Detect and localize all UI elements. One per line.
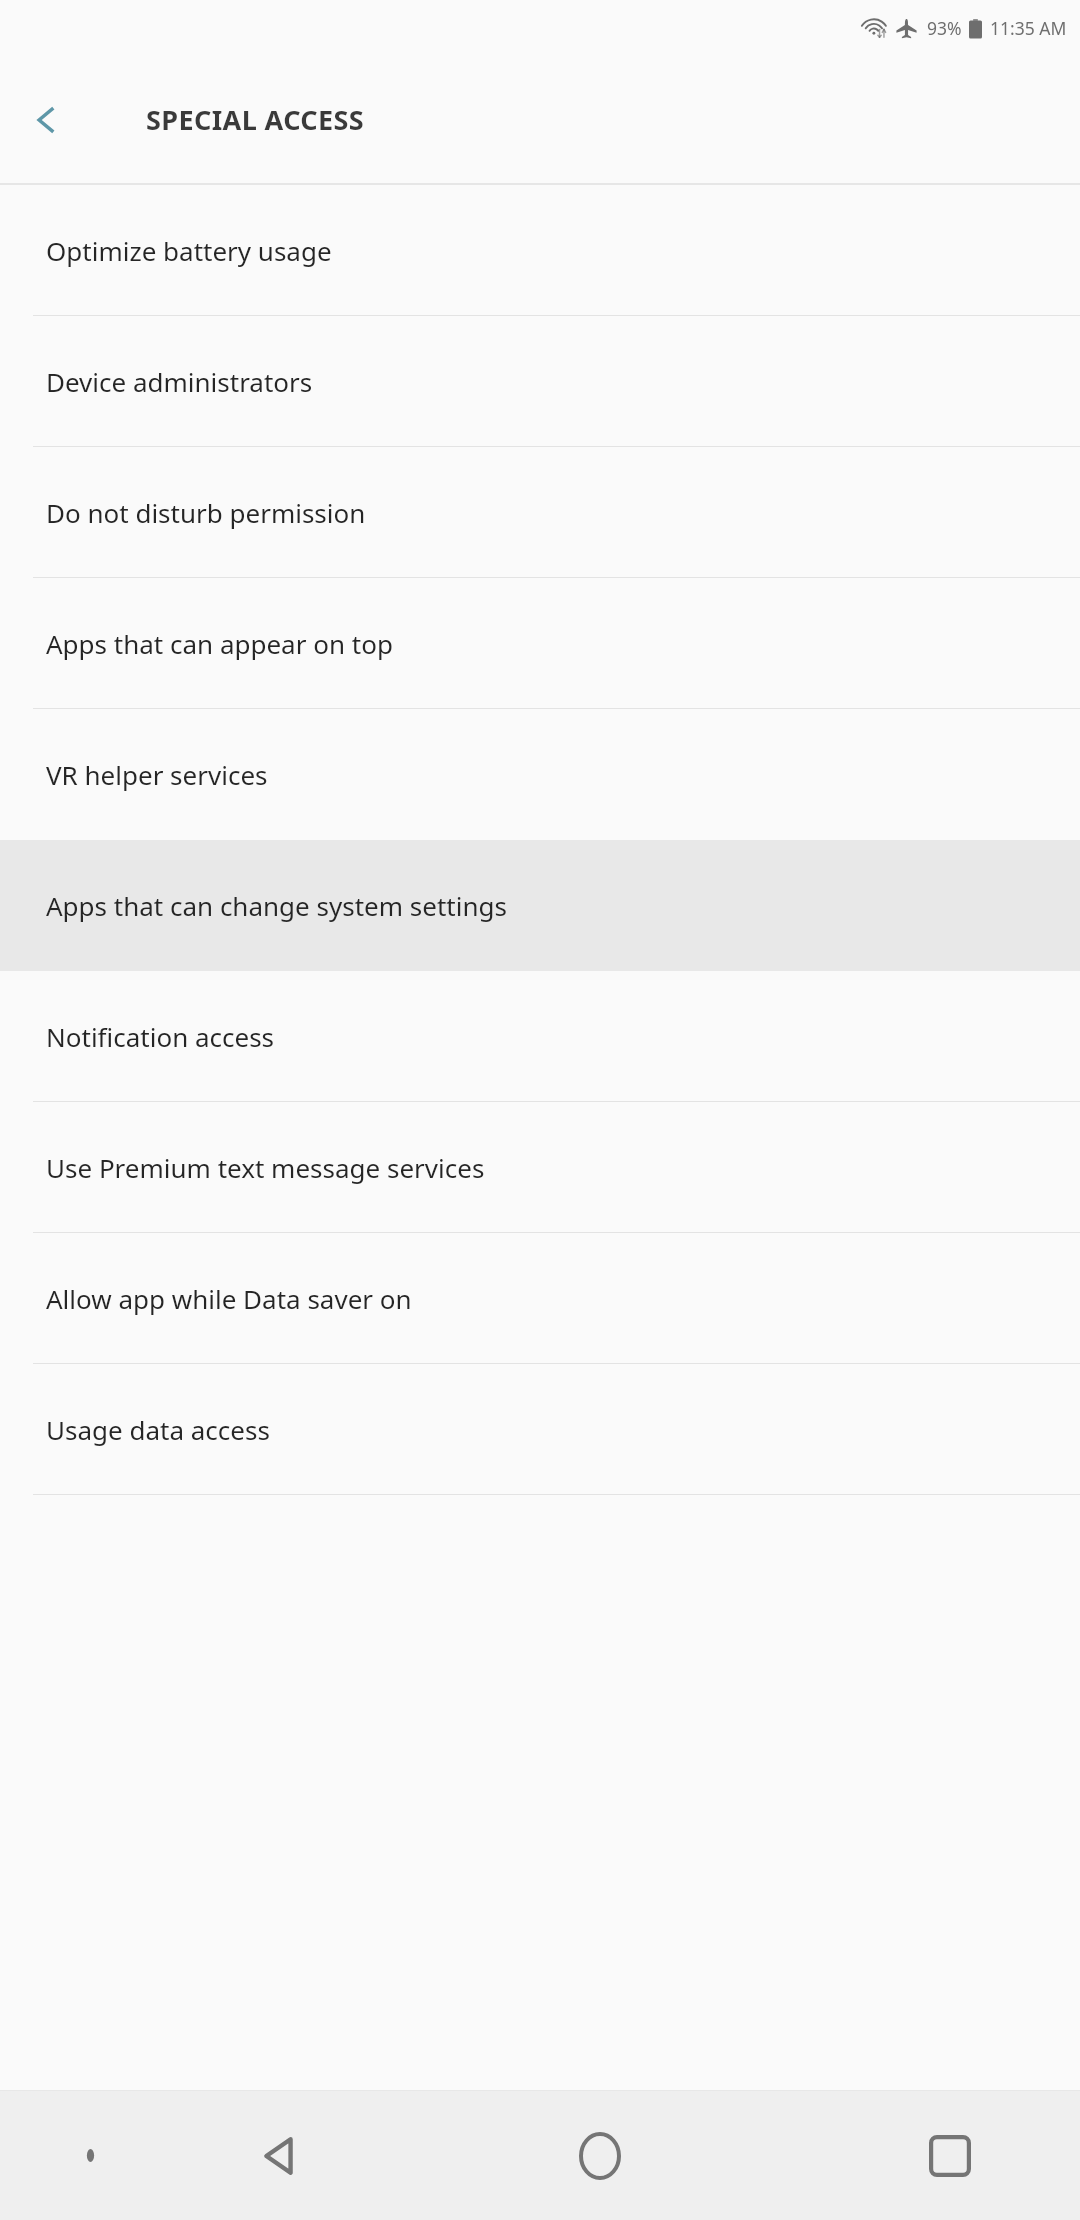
staticText: Allow app while Data saver on — [46, 1281, 412, 1316]
button[interactable]: Notification access — [0, 971, 1080, 1102]
button[interactable]: Back — [180, 2091, 380, 2220]
button[interactable]: Device administrators — [0, 316, 1080, 447]
staticText: Device administrators — [46, 364, 313, 399]
staticText: Do not disturb permission — [46, 495, 366, 530]
button[interactable]: Use Premium text message services — [0, 1102, 1080, 1233]
button[interactable]: Optimize battery usage — [0, 185, 1080, 316]
button[interactable]: Navigate up — [14, 88, 78, 152]
staticText: Apps that can appear on top — [46, 626, 393, 661]
staticText: Use Premium text message services — [46, 1150, 485, 1185]
button[interactable]: VR helper services — [0, 709, 1080, 840]
staticText: 11:35 AM — [990, 16, 1067, 40]
button[interactable]: Do not disturb permission — [0, 447, 1080, 578]
button[interactable]: Usage data access — [0, 1364, 1080, 1495]
staticText: Optimize battery usage — [46, 233, 332, 268]
staticText: 93% — [927, 16, 962, 40]
staticText: Notification access — [46, 1019, 275, 1054]
button[interactable]: Hide keyboard — [0, 2091, 180, 2220]
button[interactable]: Recent apps — [820, 2091, 1080, 2220]
button[interactable]: Allow app while Data saver on — [0, 1233, 1080, 1364]
staticText: Usage data access — [46, 1412, 270, 1447]
button[interactable]: Home — [380, 2091, 820, 2220]
button[interactable]: Apps that can appear on top — [0, 578, 1080, 709]
staticText: Apps that can change system settings — [46, 888, 507, 923]
button[interactable]: Apps that can change system settings — [0, 840, 1080, 971]
staticText: VR helper services — [46, 757, 268, 792]
staticText: SPECIAL ACCESS — [146, 101, 365, 138]
